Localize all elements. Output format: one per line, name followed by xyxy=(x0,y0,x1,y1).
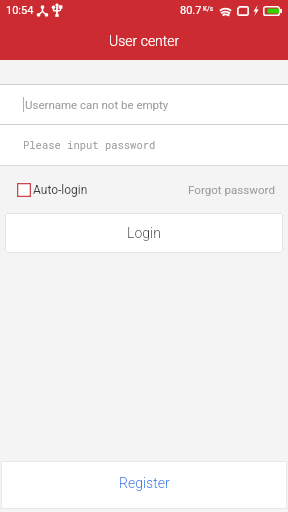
button[interactable]: Username can not be empty xyxy=(0,85,288,124)
staticText: 10:54 xyxy=(6,4,34,17)
staticText: Forgot password xyxy=(188,183,275,197)
staticText: 80.7 xyxy=(180,4,202,17)
staticText: User center xyxy=(109,33,180,49)
button[interactable]: Login xyxy=(5,213,283,253)
staticText: Please input password xyxy=(23,138,156,152)
staticText: Login xyxy=(127,225,161,241)
staticText: Auto-login xyxy=(33,183,88,197)
staticText: K/s xyxy=(203,5,214,13)
staticText: Register xyxy=(119,475,170,491)
button[interactable]: Auto-login xyxy=(17,183,88,197)
button[interactable]: Forgot password xyxy=(188,183,275,197)
button[interactable]: Register xyxy=(1,461,287,509)
staticText: Username can not be empty xyxy=(25,98,169,111)
button[interactable]: Please input password xyxy=(0,125,288,165)
